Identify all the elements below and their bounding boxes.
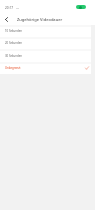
staticText: 10 Sekunden [5,29,23,33]
staticText: Zugehörige Videodauer [17,17,63,22]
button[interactable]: 10 Sekunden [0,25,95,37]
staticText: 20 Sekunden [5,41,23,45]
staticText: 4G [16,6,20,9]
staticText: 30 Sekunden [5,54,23,58]
staticText: 20:17 [5,6,14,10]
staticText: Unbegrenzt [5,66,21,70]
button[interactable]: 20 Sekunden [0,37,95,49]
button[interactable]: 30 Sekunden [0,49,95,62]
button[interactable]: Unbegrenzt [0,62,95,74]
button[interactable]: Back [0,13,13,25]
